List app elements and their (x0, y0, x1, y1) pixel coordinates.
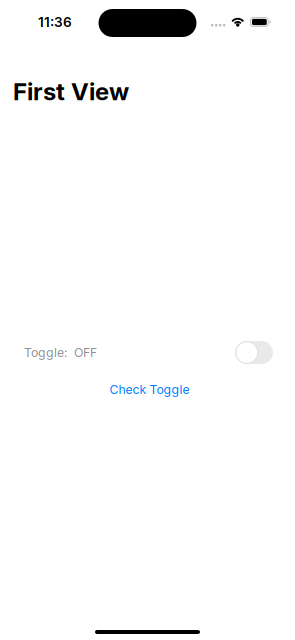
staticText: Check Toggle (109, 382, 189, 397)
staticText: First View (13, 77, 129, 106)
staticText: Toggle: OFF (24, 345, 97, 360)
button[interactable]: Check Toggle (0, 381, 295, 397)
button[interactable]: Toggle (235, 341, 273, 364)
staticText: 11:36 (38, 14, 72, 30)
